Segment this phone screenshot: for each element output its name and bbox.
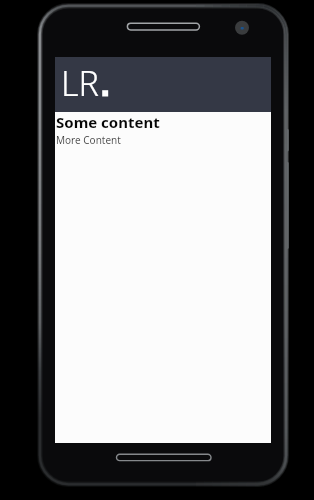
button[interactable]: LR. home [55, 57, 271, 112]
staticText: More Content [56, 133, 121, 147]
staticText: Some content [56, 112, 160, 132]
staticText: LR [61, 60, 99, 106]
